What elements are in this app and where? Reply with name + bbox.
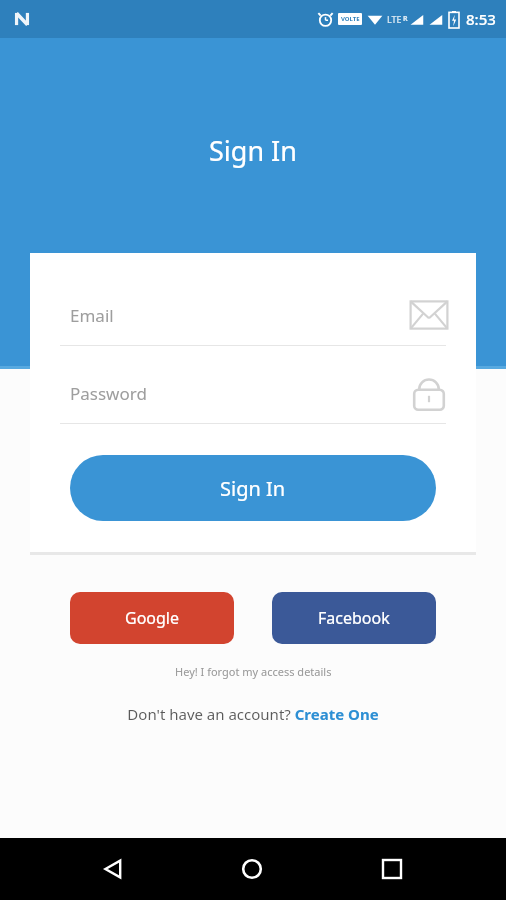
- staticText: Sign In: [220, 475, 286, 502]
- button[interactable]: Password: [57, 373, 449, 424]
- staticText: VOLTE: [341, 15, 360, 23]
- other: Password: [409, 373, 449, 413]
- other: Email: [409, 298, 449, 332]
- staticText: Password: [70, 382, 147, 405]
- button[interactable]: Google: [70, 592, 234, 644]
- button[interactable]: Email: [57, 295, 449, 346]
- button[interactable]: Facebook: [272, 592, 436, 644]
- button[interactable]: Home: [226, 843, 278, 895]
- staticText: 8:53: [466, 9, 496, 29]
- staticText: LTE: [387, 13, 402, 25]
- staticText: Hey! I forgot my access details: [175, 664, 332, 679]
- button[interactable]: Sign In: [70, 455, 436, 521]
- staticText: Email: [70, 304, 114, 327]
- button[interactable]: Hey! I forgot my access details: [0, 659, 506, 683]
- staticText: R: [403, 14, 408, 24]
- staticText: Facebook: [318, 607, 390, 629]
- staticText: Don't have an account? Create One: [127, 704, 379, 724]
- staticText: Sign In: [209, 132, 297, 169]
- staticText: Google: [125, 607, 180, 629]
- button[interactable]: Back: [87, 843, 139, 895]
- button[interactable]: Recent apps: [366, 843, 418, 895]
- button[interactable]: Don't have an account? Create One: [0, 699, 506, 729]
